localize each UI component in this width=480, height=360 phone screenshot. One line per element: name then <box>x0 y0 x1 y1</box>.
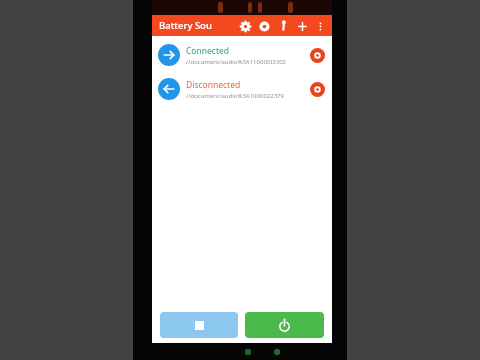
button[interactable]: Record <box>308 46 326 64</box>
staticText: Connected <box>186 45 229 57</box>
button[interactable]: Stop <box>160 312 238 338</box>
staticText: Battery Sou <box>159 19 212 32</box>
button[interactable]: Settings <box>237 18 253 34</box>
button[interactable]: Tools <box>275 18 291 34</box>
button[interactable]: More options <box>312 18 328 34</box>
staticText: //document/audio%3A1000022379 <box>186 92 284 100</box>
button[interactable]: Add <box>294 18 310 34</box>
staticText: //document/audio%3A110000I3302 <box>186 58 287 66</box>
button[interactable]: Record <box>256 18 272 34</box>
button[interactable]: Connected <box>152 38 332 72</box>
staticText: Disconnected <box>186 79 241 91</box>
button[interactable]: Disconnected <box>152 72 332 106</box>
button[interactable]: Power <box>245 312 324 338</box>
button[interactable]: Record <box>308 80 326 98</box>
